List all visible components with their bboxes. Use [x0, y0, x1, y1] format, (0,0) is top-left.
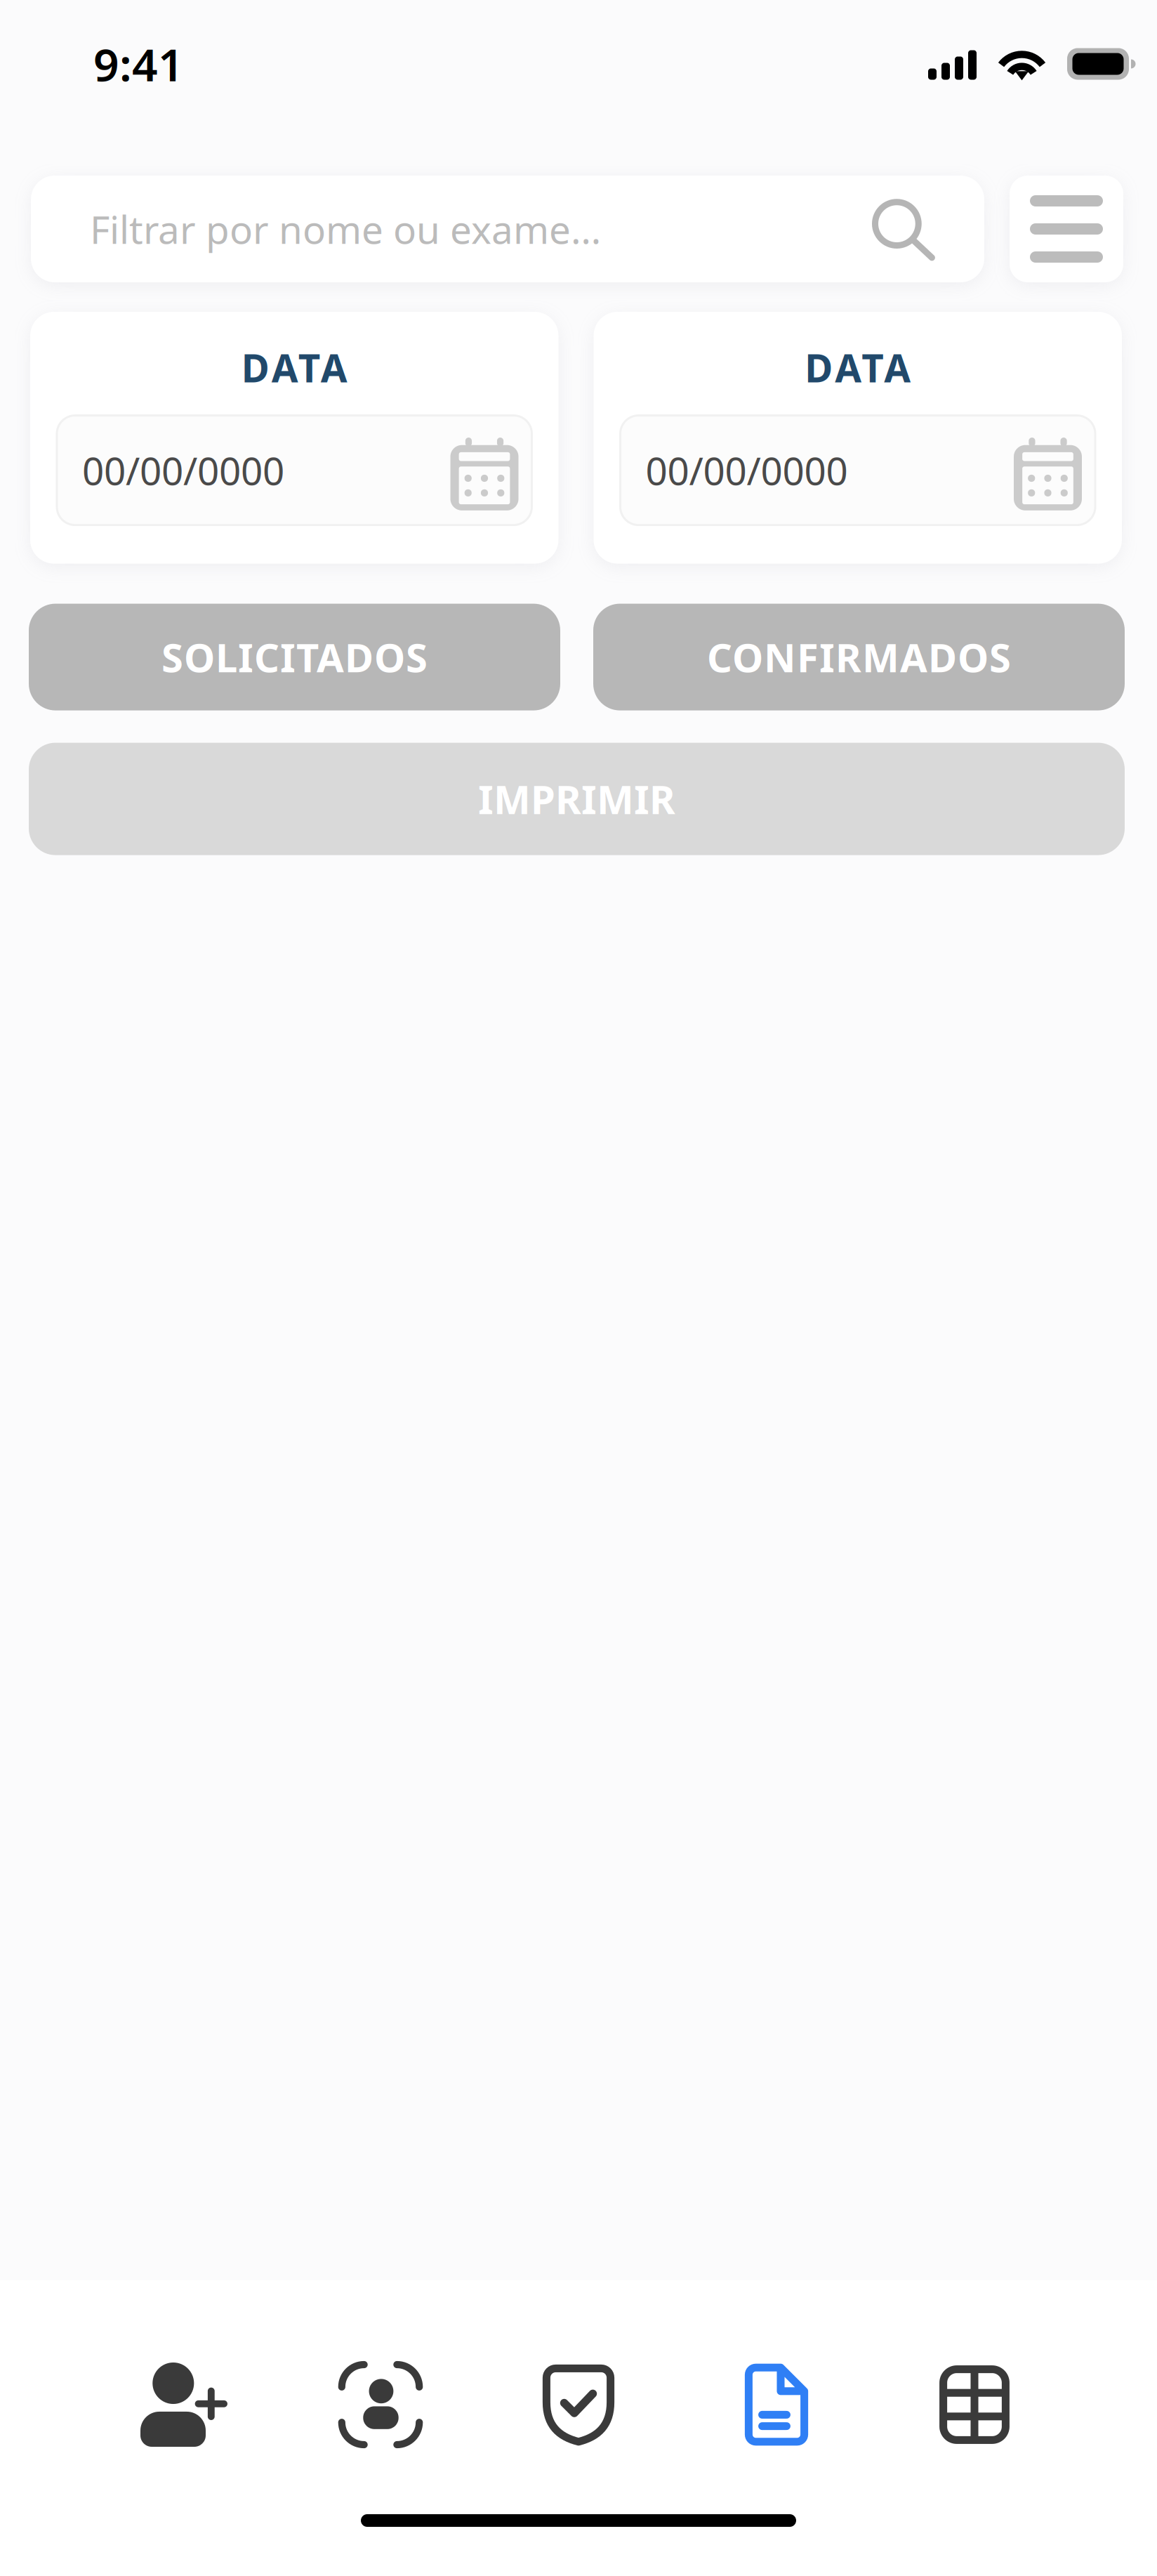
staticText: 00/00/0000	[82, 445, 284, 496]
staticText: 00/00/0000	[646, 445, 848, 496]
button[interactable]: IMPRIMIR	[29, 743, 1125, 855]
staticText: DATA	[241, 342, 347, 393]
button[interactable]: Table	[875, 2363, 1073, 2447]
staticText: DATA	[805, 342, 911, 393]
staticText: CONFIRMADOS	[707, 631, 1011, 683]
staticText: Filtrar por nome ou exame…	[90, 203, 601, 254]
button[interactable]: SOLICITADOS	[29, 604, 560, 710]
button[interactable]: Add patient	[84, 2363, 282, 2447]
staticText: 9:41	[93, 34, 184, 94]
button[interactable]: CONFIRMADOS	[593, 604, 1125, 710]
button[interactable]: Filtrar por nome ou exame…	[31, 176, 984, 282]
staticText: IMPRIMIR	[478, 773, 675, 825]
button[interactable]: Scan face	[282, 2363, 480, 2447]
button[interactable]: Documents	[677, 2363, 875, 2447]
button[interactable]: Verified	[480, 2363, 677, 2447]
button[interactable]: Menu	[1010, 176, 1123, 282]
staticText: SOLICITADOS	[161, 631, 428, 683]
